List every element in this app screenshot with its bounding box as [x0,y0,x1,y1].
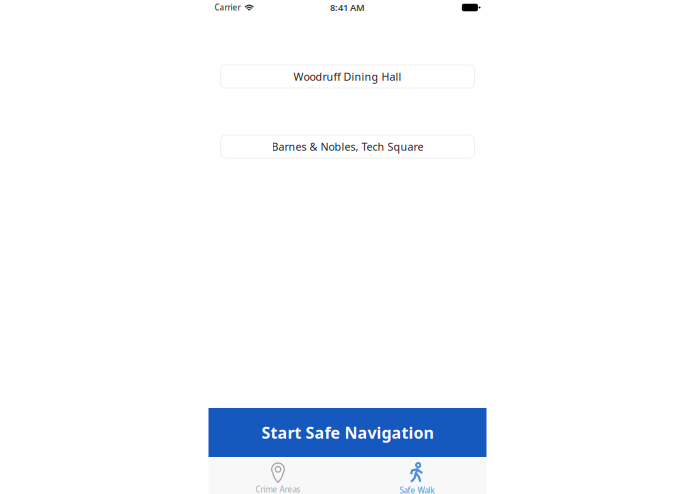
staticText: Crime Areas [255,484,300,494]
button[interactable]: Start Safe Navigation [208,408,486,457]
button[interactable]: Crime Areas [208,458,347,494]
staticText: Barnes & Nobles, Tech Square [271,139,423,154]
staticText: Safe Walk [399,485,434,494]
staticText: 8:41 AM [330,1,365,14]
staticText: Start Safe Navigation [261,422,433,443]
staticText: Carrier [214,2,240,13]
button[interactable]: Barnes & Nobles, Tech Square [220,135,474,158]
button[interactable]: Safe Walk [347,458,486,494]
button[interactable]: Woodruff Dining Hall [220,65,474,88]
staticText: Woodruff Dining Hall [293,69,401,84]
